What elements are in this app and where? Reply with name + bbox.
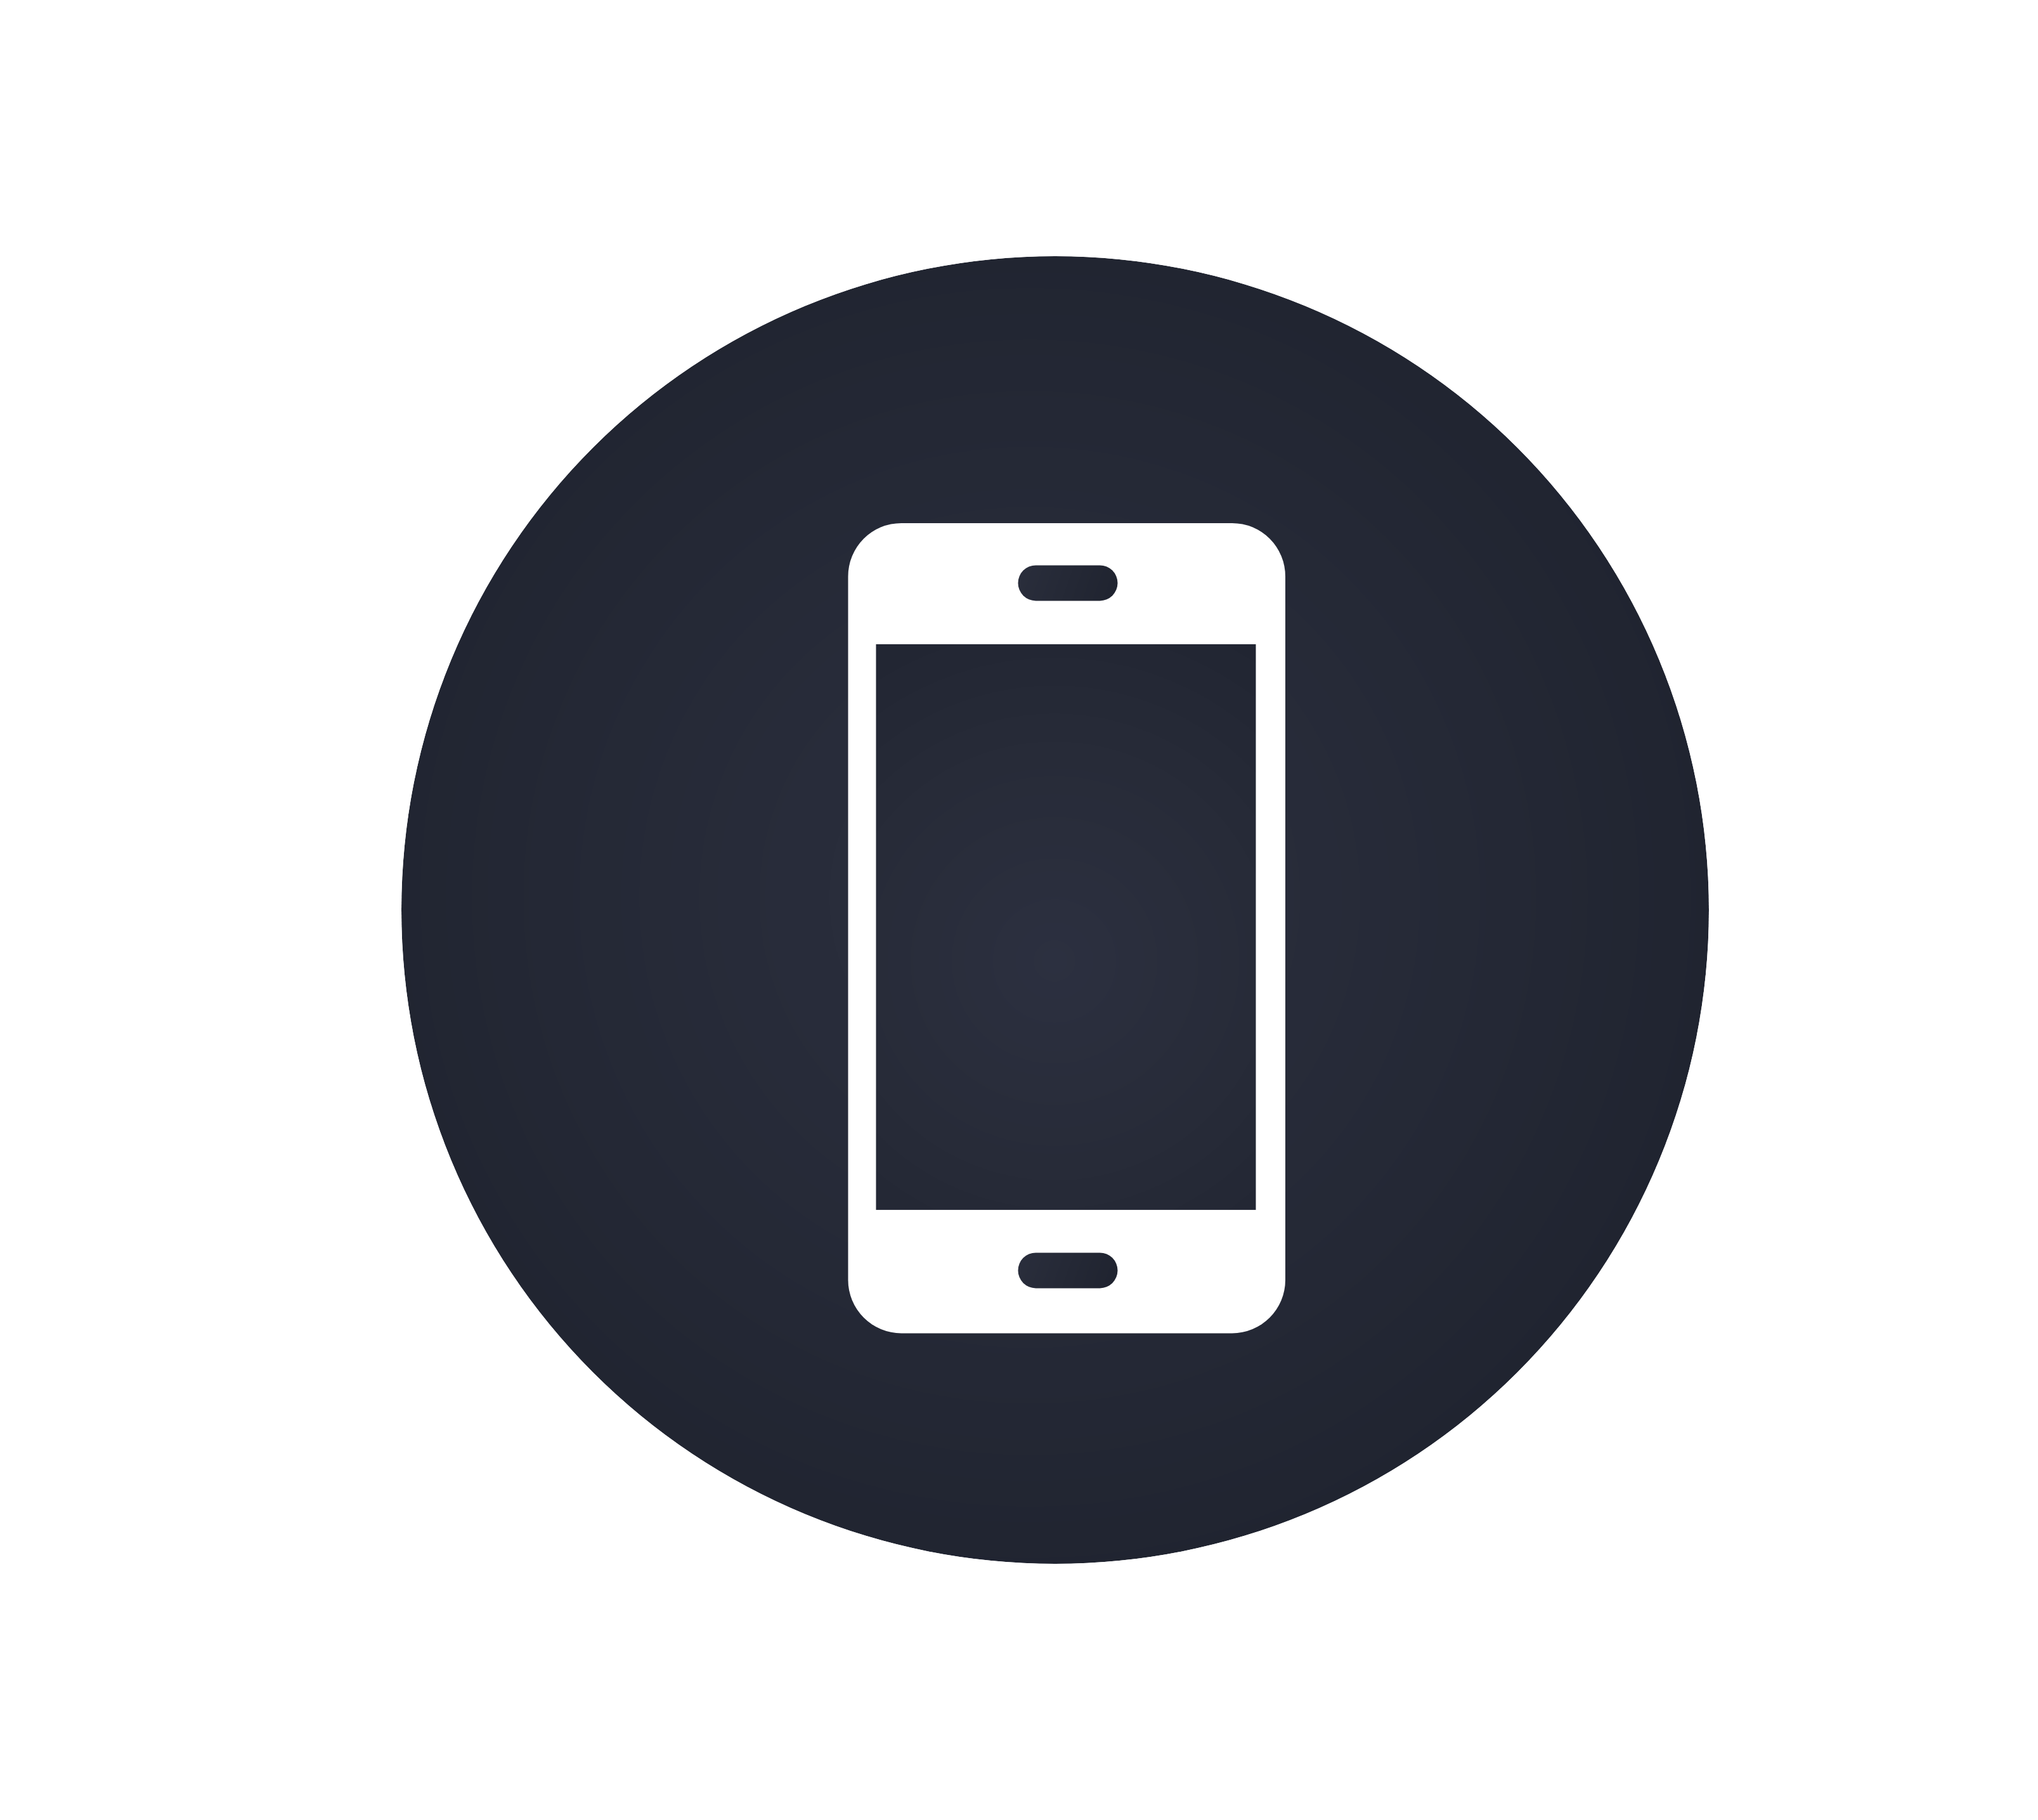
button[interactable]: Mobile phone app icon bbox=[401, 256, 1709, 1564]
